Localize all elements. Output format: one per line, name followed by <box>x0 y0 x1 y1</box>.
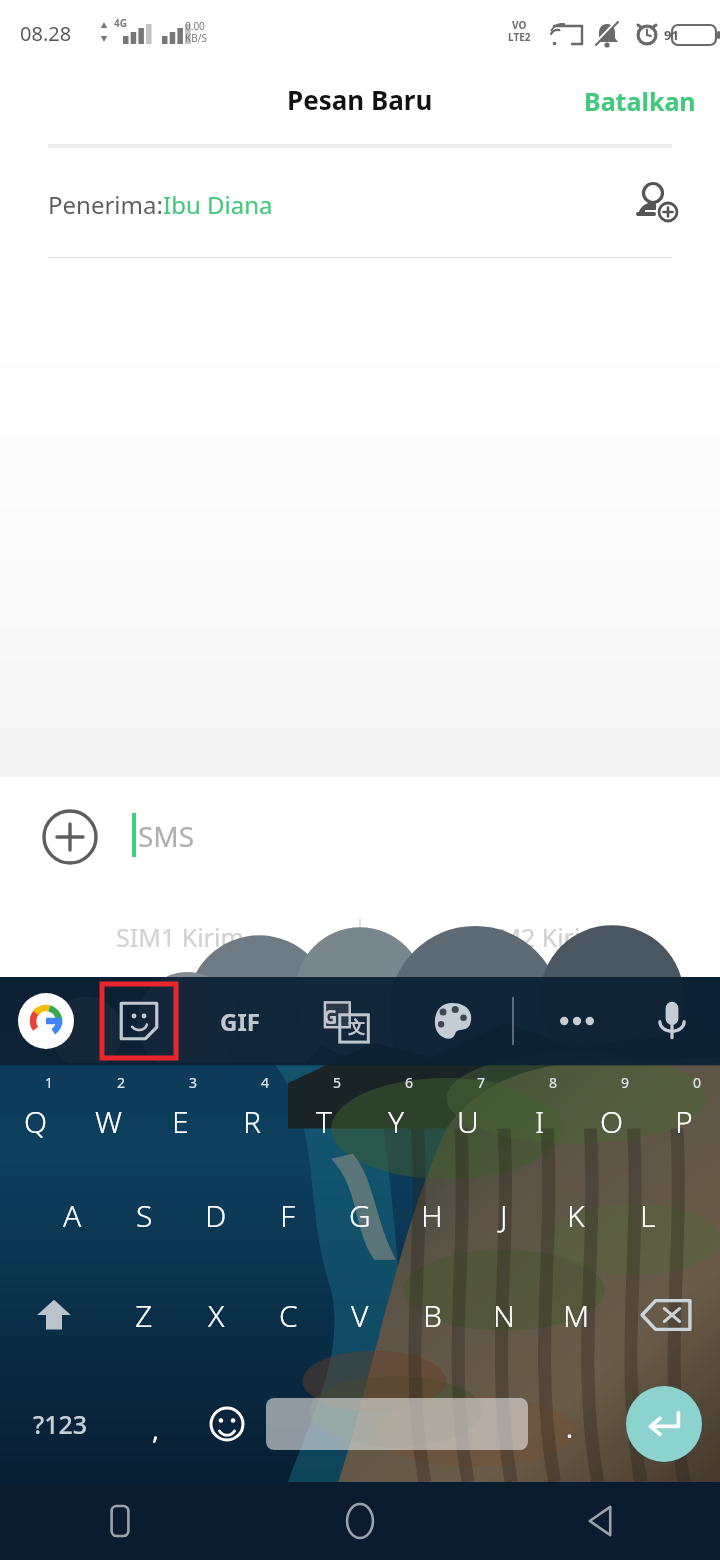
staticText: SIM1 Kirim <box>116 920 244 954</box>
button[interactable]: Enter <box>626 1386 702 1462</box>
staticText: 6 <box>405 1073 414 1092</box>
button[interactable]: 0 <box>648 1065 720 1165</box>
staticText: ?123 <box>33 1407 88 1441</box>
button[interactable]: ?123 <box>0 1365 120 1482</box>
staticText: M <box>563 1295 590 1336</box>
button[interactable]: Google search <box>18 993 74 1049</box>
button[interactable]: J <box>468 1165 540 1265</box>
button[interactable]: Themes <box>420 989 484 1053</box>
staticText: J <box>500 1195 508 1236</box>
button[interactable]: , <box>120 1365 191 1482</box>
staticText: SMS <box>138 817 195 855</box>
staticText: VO <box>512 18 527 32</box>
button[interactable]: 3 <box>144 1065 216 1165</box>
staticText: V <box>351 1295 369 1336</box>
staticText: Ibu Diana <box>163 188 273 221</box>
staticText: G <box>349 1195 371 1236</box>
staticText: O <box>600 1101 624 1142</box>
staticText: W <box>95 1101 122 1142</box>
staticText: P <box>675 1101 693 1142</box>
staticText: E <box>172 1101 189 1142</box>
staticText: G <box>323 1003 338 1030</box>
staticText: C <box>279 1295 298 1336</box>
button[interactable]: 1 <box>0 1065 72 1165</box>
button[interactable]: Penerima: <box>0 152 720 257</box>
staticText: L <box>640 1195 656 1236</box>
button[interactable]: F <box>252 1165 324 1265</box>
staticText: A <box>63 1195 82 1236</box>
staticText: KB/S <box>185 31 207 45</box>
button[interactable]: Attach <box>38 805 102 869</box>
staticText: B <box>423 1295 442 1336</box>
button[interactable]: 7 <box>432 1065 504 1165</box>
button[interactable]: GIF <box>205 986 275 1056</box>
button[interactable]: Add contact <box>632 179 684 231</box>
staticText: X <box>208 1295 225 1336</box>
button[interactable]: More options <box>545 989 609 1053</box>
button[interactable]: Z <box>108 1265 180 1365</box>
button[interactable]: SIM1 Kirim <box>0 897 360 977</box>
button[interactable]: M <box>540 1265 612 1365</box>
staticText: 91 <box>664 26 679 44</box>
button[interactable]: Shift <box>0 1265 108 1365</box>
staticText: 7 <box>477 1073 486 1092</box>
button[interactable]: A <box>36 1165 108 1265</box>
staticText: N <box>493 1295 515 1336</box>
staticText: 08.28 <box>20 20 72 47</box>
button[interactable]: 4 <box>216 1065 288 1165</box>
staticText: Pesan Baru <box>287 82 433 117</box>
button[interactable]: 9 <box>576 1065 648 1165</box>
staticText: LTE2 <box>508 30 531 44</box>
staticText: . <box>566 1410 573 1445</box>
staticText: 1 <box>45 1073 54 1092</box>
button[interactable]: Backspace <box>612 1265 720 1365</box>
button[interactable]: Recent apps <box>0 1482 240 1560</box>
button[interactable]: V <box>324 1265 396 1365</box>
staticText: I <box>535 1101 545 1142</box>
staticText: Z <box>135 1295 153 1336</box>
staticText: U <box>457 1101 479 1142</box>
staticText: F <box>280 1195 296 1236</box>
button[interactable]: 5 <box>288 1065 360 1165</box>
button[interactable]: 6 <box>360 1065 432 1165</box>
staticText: 0.00 <box>185 19 205 33</box>
staticText: K <box>567 1195 585 1236</box>
button[interactable]: Back <box>480 1482 720 1560</box>
button[interactable]: Voice input <box>640 989 704 1053</box>
staticText: H <box>421 1195 443 1236</box>
button[interactable]: C <box>252 1265 324 1365</box>
staticText: 0 <box>693 1073 702 1092</box>
staticText: 文 <box>348 1017 365 1038</box>
button[interactable]: S <box>108 1165 180 1265</box>
button[interactable]: 8 <box>504 1065 576 1165</box>
button[interactable]: Stickers <box>102 984 176 1058</box>
button[interactable]: . <box>532 1365 607 1482</box>
button[interactable]: L <box>612 1165 684 1265</box>
button[interactable]: Home <box>240 1482 480 1560</box>
staticText: Q <box>24 1101 48 1142</box>
button[interactable]: N <box>468 1265 540 1365</box>
staticText: SIM2 Kirim <box>476 920 604 954</box>
button[interactable]: B <box>396 1265 468 1365</box>
staticText: T <box>316 1101 332 1142</box>
staticText: 4 <box>261 1073 270 1092</box>
staticText: S <box>136 1195 153 1236</box>
button[interactable]: H <box>396 1165 468 1265</box>
button[interactable]: 2 <box>72 1065 144 1165</box>
staticText: 3 <box>189 1073 198 1092</box>
button[interactable]: K <box>540 1165 612 1265</box>
staticText: 5 <box>333 1073 342 1092</box>
button[interactable]: Emoji <box>191 1365 262 1482</box>
button[interactable]: Space <box>266 1398 528 1450</box>
button[interactable]: SIM2 Kirim <box>360 897 720 977</box>
button[interactable]: Batalkan <box>574 74 706 128</box>
button[interactable]: G <box>324 1165 396 1265</box>
button[interactable]: X <box>180 1265 252 1365</box>
staticText: Y <box>388 1101 405 1142</box>
staticText: 2 <box>117 1073 126 1092</box>
button[interactable]: Translate <box>315 990 377 1052</box>
staticText: 9 <box>621 1073 630 1092</box>
staticText: 8 <box>549 1073 558 1092</box>
button[interactable]: D <box>180 1165 252 1265</box>
staticText: 4G <box>114 16 127 30</box>
